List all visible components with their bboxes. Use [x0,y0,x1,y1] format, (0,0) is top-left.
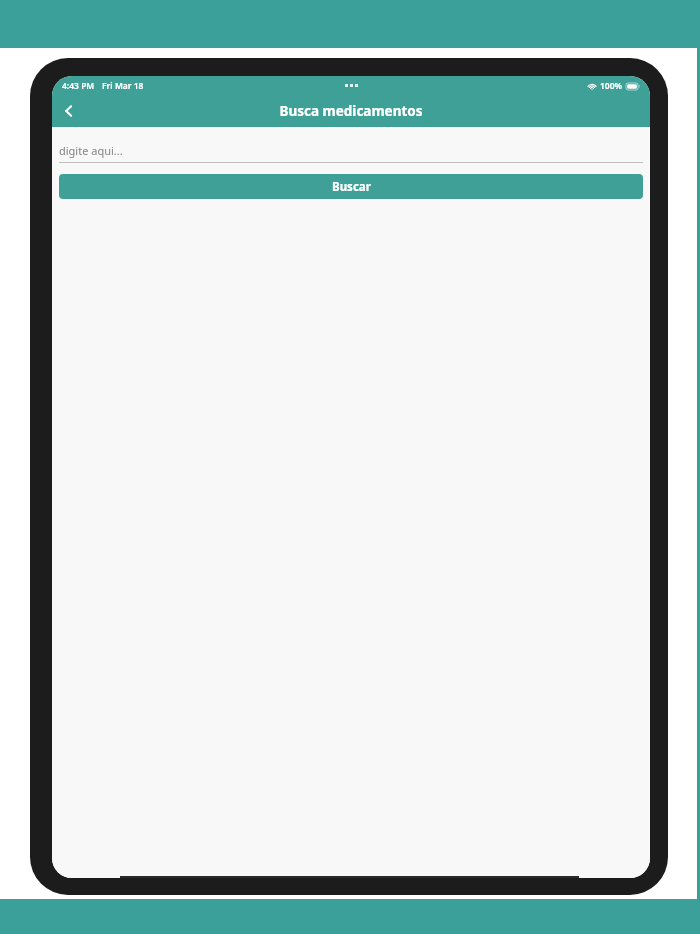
button[interactable]: digite aqui... [59,137,643,163]
staticText: digite aqui... [59,143,123,158]
staticText: Buscar [332,179,371,195]
button[interactable]: Back [52,95,86,127]
staticText: Fri Mar 18 [102,80,144,92]
staticText: 4:43 PM [62,80,95,92]
button[interactable]: Buscar [59,174,643,199]
staticText: Busca medicamentos [279,102,423,120]
staticText: 100% [600,80,623,92]
